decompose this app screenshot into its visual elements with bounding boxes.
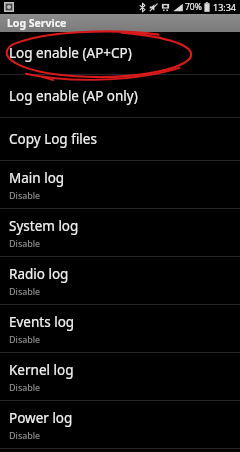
staticText: 70% [185, 1, 202, 13]
button[interactable]: Radio log [0, 257, 240, 304]
staticText: Disable [9, 189, 41, 201]
staticText: Disable [9, 237, 41, 249]
staticText: Copy Log files [9, 130, 97, 148]
button[interactable]: Log enable (AP+CP) [0, 32, 240, 74]
button[interactable]: Log Service [0, 14, 240, 32]
button[interactable]: Copy Log files [0, 118, 240, 160]
staticText: System log [9, 217, 79, 235]
staticText: Disable [9, 429, 41, 441]
staticText: Kernel log [9, 361, 74, 379]
button[interactable]: Events log [0, 305, 240, 352]
staticText: Disable [9, 285, 41, 297]
staticText: Events log [9, 313, 75, 331]
staticText: Main log [9, 169, 65, 187]
staticText: Disable [9, 381, 41, 393]
button[interactable]: Main log [0, 161, 240, 208]
staticText: 13:34 [213, 1, 237, 13]
button[interactable]: System log [0, 209, 240, 256]
button[interactable]: Kernel log [0, 353, 240, 400]
staticText: Log enable (AP+CP) [9, 44, 132, 62]
staticText: Log enable (AP only) [9, 87, 138, 105]
staticText: Disable [9, 333, 41, 345]
staticText: Radio log [9, 265, 69, 283]
button[interactable]: Power log [0, 401, 240, 448]
button[interactable]: Log enable (AP only) [0, 75, 240, 117]
staticText: Power log [9, 409, 73, 427]
staticText: Log Service [7, 16, 67, 30]
